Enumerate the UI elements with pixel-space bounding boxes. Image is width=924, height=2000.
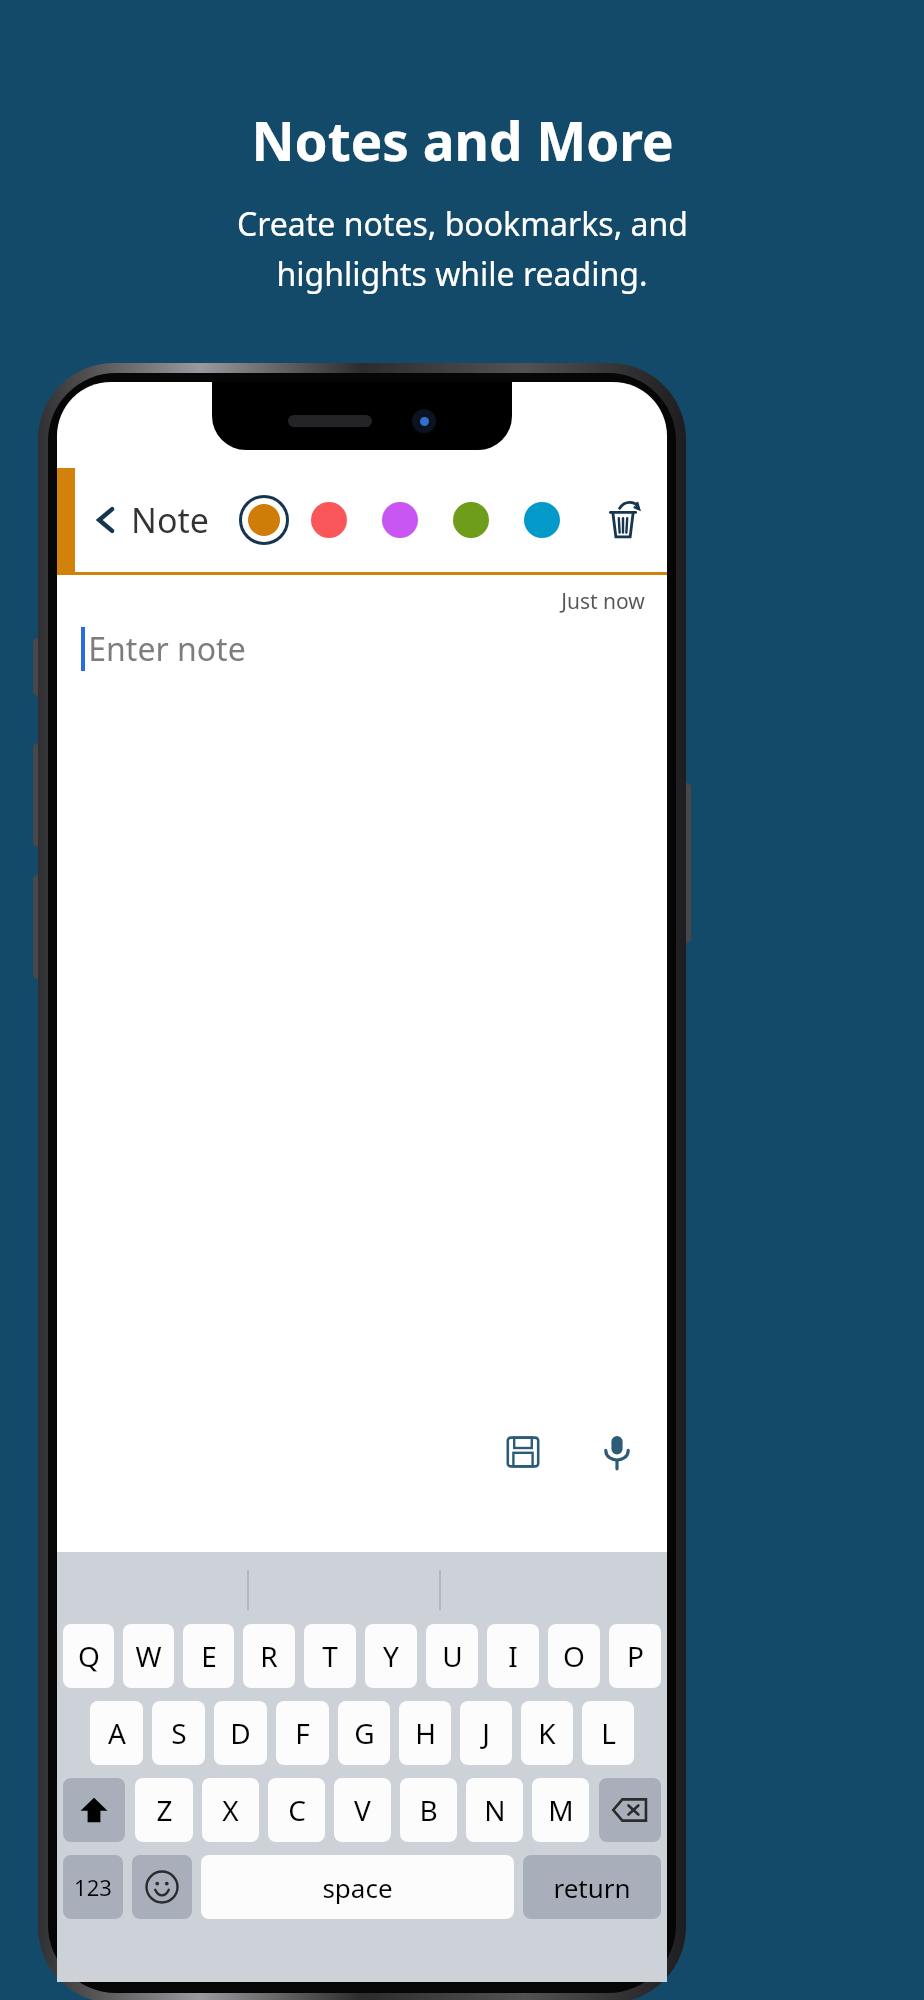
staticText: Q	[78, 1637, 100, 1675]
staticText: Just now	[561, 587, 645, 616]
staticText: M	[548, 1791, 574, 1829]
button[interactable]: I	[487, 1624, 539, 1688]
button[interactable]: E	[183, 1624, 234, 1688]
button[interactable]: Voice input	[589, 1424, 645, 1480]
staticText: P	[627, 1637, 644, 1675]
staticText: G	[354, 1714, 375, 1752]
button[interactable]: Emoji	[132, 1855, 192, 1919]
button[interactable]: C	[268, 1778, 325, 1842]
staticText: F	[295, 1714, 310, 1752]
button[interactable]: Save note	[495, 1424, 551, 1480]
button[interactable]: 123	[63, 1855, 123, 1919]
staticText: N	[484, 1791, 506, 1829]
button[interactable]: J	[460, 1701, 512, 1765]
other: Shift	[78, 1794, 110, 1826]
staticText: C	[288, 1791, 306, 1829]
staticText: H	[415, 1714, 436, 1752]
staticText: K	[538, 1714, 556, 1752]
staticText: Create notes, bookmarks, and	[237, 202, 688, 246]
button[interactable]: return	[523, 1855, 661, 1919]
staticText: O	[563, 1637, 585, 1675]
staticText: Enter note	[88, 627, 246, 671]
button[interactable]: O	[548, 1624, 600, 1688]
button[interactable]: V	[334, 1778, 391, 1842]
button[interactable]: Shift	[63, 1778, 125, 1842]
button[interactable]: H	[399, 1701, 451, 1765]
button[interactable]: Backspace	[599, 1778, 661, 1842]
button[interactable]: Green highlight	[449, 498, 493, 542]
staticText: D	[230, 1714, 251, 1752]
button[interactable]: L	[582, 1701, 634, 1765]
staticText: J	[482, 1714, 490, 1752]
button[interactable]: P	[609, 1624, 661, 1688]
staticText: T	[322, 1637, 338, 1675]
button[interactable]: U	[426, 1624, 478, 1688]
staticText: R	[260, 1637, 278, 1675]
button[interactable]: W	[123, 1624, 174, 1688]
button[interactable]: B	[400, 1778, 457, 1842]
button[interactable]: space	[201, 1855, 514, 1919]
staticText: highlights while reading.	[276, 252, 648, 296]
button[interactable]: S	[152, 1701, 205, 1765]
button[interactable]: A	[90, 1701, 143, 1765]
staticText: S	[171, 1714, 187, 1752]
staticText: return	[553, 1870, 631, 1905]
button[interactable]: G	[338, 1701, 390, 1765]
staticText: X	[222, 1791, 239, 1829]
staticText: I	[508, 1637, 518, 1675]
button[interactable]: Delete note	[597, 494, 649, 546]
button[interactable]: Purple highlight	[378, 498, 422, 542]
staticText: Note	[131, 497, 209, 543]
button[interactable]: R	[243, 1624, 295, 1688]
button[interactable]: T	[304, 1624, 356, 1688]
button[interactable]: Z	[135, 1778, 193, 1842]
button[interactable]: D	[214, 1701, 267, 1765]
button[interactable]: Note	[89, 497, 217, 543]
button[interactable]: Blue highlight	[520, 498, 564, 542]
button[interactable]: Orange highlight	[239, 495, 289, 545]
staticText: 123	[74, 1872, 112, 1902]
staticText: V	[354, 1791, 371, 1829]
button[interactable]: K	[521, 1701, 573, 1765]
staticText: W	[135, 1637, 162, 1675]
button[interactable]: Y	[365, 1624, 417, 1688]
button[interactable]: Red highlight	[307, 498, 351, 542]
button[interactable]: X	[202, 1778, 259, 1842]
staticText: Notes and More	[251, 104, 674, 176]
staticText: E	[201, 1637, 217, 1675]
button[interactable]: M	[532, 1778, 589, 1842]
staticText: L	[601, 1714, 616, 1752]
button[interactable]: F	[276, 1701, 329, 1765]
staticText: Y	[383, 1637, 399, 1675]
staticText: U	[442, 1637, 463, 1675]
staticText: B	[419, 1791, 438, 1829]
staticText: A	[108, 1714, 126, 1752]
staticText: Z	[156, 1791, 173, 1829]
button[interactable]: Q	[63, 1624, 114, 1688]
button[interactable]: N	[466, 1778, 523, 1842]
staticText: space	[322, 1870, 393, 1905]
other: Backspace	[611, 1791, 649, 1829]
